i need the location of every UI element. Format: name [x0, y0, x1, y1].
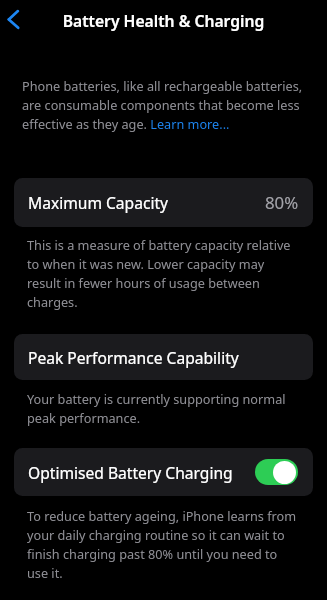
button[interactable]: Optimised Battery Charging	[14, 448, 313, 496]
staticText: To reduce battery ageing, iPhone learns …	[27, 507, 301, 582]
staticText: Optimised Battery Charging	[28, 462, 233, 483]
staticText: Phone batteries, like all rechargeable b…	[22, 77, 308, 133]
button[interactable]: Maximum Capacity	[14, 178, 313, 227]
staticText: Peak Performance Capability	[28, 347, 239, 368]
button[interactable]: Optimised Battery Charging	[255, 459, 298, 485]
staticText: This is a measure of battery capacity re…	[27, 236, 301, 311]
button[interactable]: Back	[1, 1, 37, 37]
staticText: 80%	[265, 191, 299, 214]
staticText: Battery Health & Charging	[0, 10, 327, 31]
button[interactable]: Peak Performance Capability	[14, 334, 313, 380]
staticText: Maximum Capacity	[28, 192, 169, 213]
staticText: Your battery is currently supporting nor…	[27, 390, 301, 427]
